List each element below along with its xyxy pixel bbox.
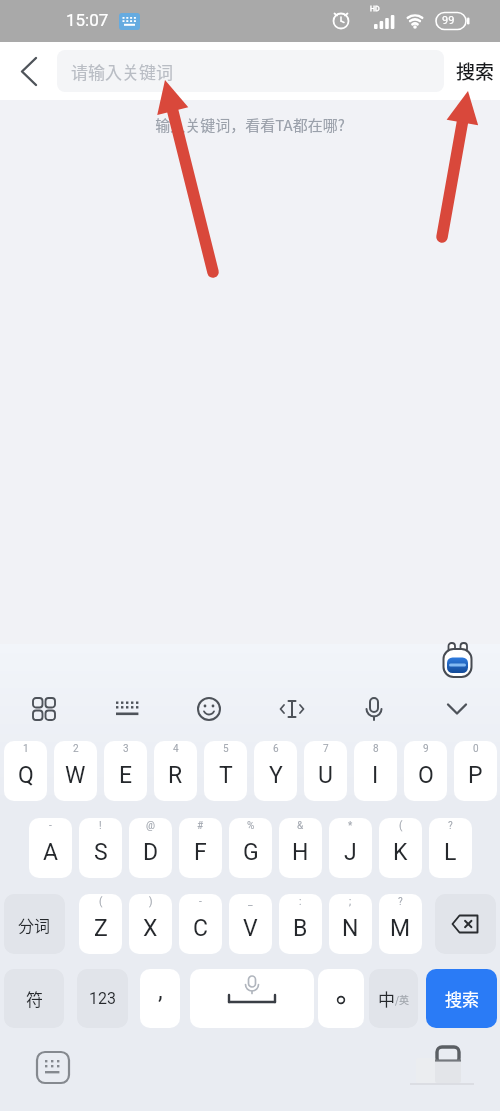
staticText: T bbox=[219, 762, 233, 789]
staticText: ; bbox=[349, 896, 352, 908]
button[interactable] bbox=[435, 687, 479, 731]
button[interactable] bbox=[318, 969, 364, 1028]
button[interactable] bbox=[435, 894, 496, 954]
button[interactable]: @ bbox=[129, 818, 172, 878]
button[interactable]: ? bbox=[429, 818, 472, 878]
button[interactable]: 5 bbox=[204, 741, 247, 801]
button[interactable]: 123 bbox=[77, 969, 128, 1028]
button[interactable]: 9 bbox=[404, 741, 447, 801]
button[interactable]: _ bbox=[229, 894, 272, 954]
staticText: # bbox=[197, 820, 204, 832]
button[interactable] bbox=[22, 687, 66, 731]
button[interactable]: ) bbox=[129, 894, 172, 954]
button[interactable] bbox=[33, 1047, 73, 1087]
button[interactable] bbox=[352, 687, 396, 731]
staticText: - bbox=[49, 820, 52, 832]
staticText: 搜索 bbox=[456, 57, 495, 85]
staticText: M bbox=[390, 915, 411, 942]
button[interactable]: ; bbox=[329, 894, 372, 954]
staticText: C bbox=[193, 915, 208, 942]
button[interactable]: 3 bbox=[104, 741, 147, 801]
button[interactable] bbox=[6, 50, 50, 94]
staticText: 5 bbox=[223, 743, 229, 755]
button[interactable]: 8 bbox=[354, 741, 397, 801]
button[interactable]: # bbox=[179, 818, 222, 878]
staticText: /英 bbox=[395, 992, 409, 1006]
staticText: 3 bbox=[123, 743, 129, 755]
button[interactable]: - bbox=[29, 818, 72, 878]
staticText: G bbox=[243, 839, 259, 866]
staticText: O bbox=[418, 762, 434, 789]
staticText: Y bbox=[269, 762, 283, 789]
button[interactable]: , bbox=[140, 969, 180, 1028]
staticText: 99 bbox=[442, 14, 455, 27]
staticText: - bbox=[199, 896, 202, 908]
staticText: ( bbox=[399, 820, 403, 832]
staticText: 2 bbox=[73, 743, 79, 755]
button[interactable]: 搜索 bbox=[426, 969, 497, 1028]
staticText: I bbox=[372, 762, 379, 789]
staticText: ? bbox=[448, 820, 453, 832]
staticText: ) bbox=[149, 896, 153, 908]
staticText: R bbox=[168, 762, 183, 789]
button[interactable]: 4 bbox=[154, 741, 197, 801]
staticText: K bbox=[393, 839, 408, 866]
button[interactable]: 2 bbox=[54, 741, 97, 801]
button[interactable]: 请输入关键词 bbox=[57, 50, 444, 92]
staticText: 符 bbox=[26, 986, 43, 1011]
staticText: HD bbox=[370, 5, 380, 13]
staticText: 1 bbox=[23, 743, 29, 755]
button[interactable] bbox=[187, 687, 231, 731]
staticText: 输入关键词，看看TA都在哪? bbox=[0, 114, 500, 136]
staticText: 6 bbox=[273, 743, 279, 755]
button[interactable]: 1 bbox=[4, 741, 47, 801]
button[interactable]: : bbox=[279, 894, 322, 954]
staticText: E bbox=[119, 762, 133, 789]
staticText: @ bbox=[146, 820, 155, 832]
staticText: 123 bbox=[89, 989, 116, 1008]
button[interactable] bbox=[105, 687, 149, 731]
staticText: % bbox=[247, 820, 255, 832]
button[interactable]: ! bbox=[79, 818, 122, 878]
button[interactable]: 0 bbox=[454, 741, 497, 801]
staticText: ! bbox=[99, 820, 102, 832]
button[interactable]: 分词 bbox=[4, 894, 65, 954]
button[interactable]: ( bbox=[379, 818, 422, 878]
button[interactable]: - bbox=[179, 894, 222, 954]
button[interactable]: & bbox=[279, 818, 322, 878]
staticText: Q bbox=[18, 762, 34, 789]
button[interactable]: 符 bbox=[4, 969, 64, 1028]
button[interactable]: * bbox=[329, 818, 372, 878]
button[interactable]: 搜索 bbox=[450, 50, 500, 92]
staticText: N bbox=[342, 915, 359, 942]
button[interactable]: 中 bbox=[369, 969, 418, 1028]
staticText: F bbox=[194, 839, 207, 866]
staticText: J bbox=[344, 839, 357, 866]
staticText: W bbox=[65, 762, 86, 789]
button[interactable] bbox=[190, 969, 314, 1028]
staticText: H bbox=[292, 839, 309, 866]
staticText: Z bbox=[94, 915, 108, 942]
staticText: , bbox=[158, 977, 163, 1005]
staticText: B bbox=[293, 915, 308, 942]
button[interactable]: ? bbox=[379, 894, 422, 954]
button[interactable]: % bbox=[229, 818, 272, 878]
staticText: 请输入关键词 bbox=[71, 59, 173, 84]
staticText: _ bbox=[248, 896, 253, 908]
staticText: 搜索 bbox=[445, 986, 479, 1011]
staticText: & bbox=[297, 820, 304, 832]
staticText: X bbox=[143, 915, 158, 942]
staticText: 8 bbox=[373, 743, 379, 755]
staticText: ? bbox=[398, 896, 403, 908]
staticText: 7 bbox=[323, 743, 329, 755]
staticText: P bbox=[468, 762, 483, 789]
staticText: D bbox=[143, 839, 159, 866]
staticText: 4 bbox=[173, 743, 179, 755]
button[interactable] bbox=[441, 640, 475, 680]
button[interactable]: ( bbox=[79, 894, 122, 954]
button[interactable]: 6 bbox=[254, 741, 297, 801]
staticText: 分词 bbox=[18, 913, 51, 936]
staticText: 0 bbox=[473, 743, 479, 755]
button[interactable]: 7 bbox=[304, 741, 347, 801]
button[interactable] bbox=[270, 687, 314, 731]
